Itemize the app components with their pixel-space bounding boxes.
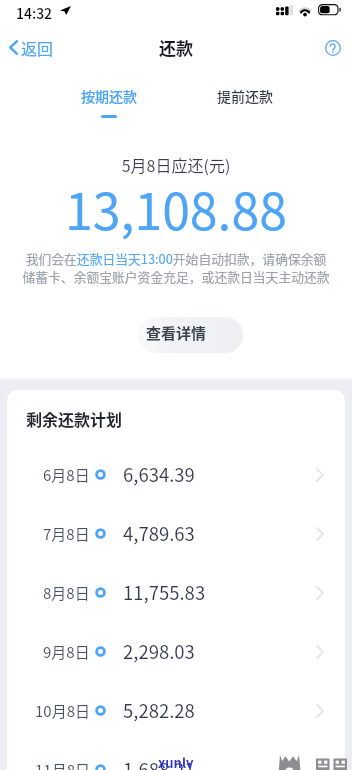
button[interactable]: 8月8日 [0, 563, 352, 622]
staticText: 8月8日 [43, 582, 90, 604]
button[interactable]: 9月8日 [0, 622, 352, 681]
staticText: 返回 [21, 36, 54, 59]
staticText: 还款 [159, 35, 193, 60]
staticText: 提前还款 [217, 86, 273, 106]
staticText: 储蓄卡、余额宝账户资金充足，或还款日当天主动还款 [0, 267, 352, 286]
staticText: 5,282.28 [123, 697, 195, 724]
staticText: 6月8日 [43, 464, 90, 486]
button[interactable]: 7月8日 [0, 504, 352, 563]
staticText: 13,108.88 [0, 172, 352, 244]
button[interactable]: 6月8日 [0, 445, 352, 504]
staticText: 2,298.03 [123, 638, 195, 665]
staticText: 我们会在还款日当天13:00开始自动扣款，请确保余额 [0, 249, 352, 268]
staticText: 按期还款 [81, 86, 137, 106]
staticText: 14:32 [16, 3, 53, 23]
staticText: xunlv [158, 753, 194, 770]
button[interactable]: 11月8日 [0, 740, 352, 770]
button[interactable] [138, 317, 243, 353]
staticText: 6,634.39 [123, 461, 195, 488]
staticText: 1,688.21 [123, 756, 195, 770]
button[interactable]: Help [320, 34, 346, 60]
button[interactable]: 返回 [4, 30, 62, 65]
staticText: 5月8日应还(元) [0, 153, 352, 176]
staticText: 7月8日 [43, 523, 90, 545]
button[interactable]: 提前还款 [192, 72, 297, 120]
staticText: 剩余还款计划 [26, 407, 123, 430]
button[interactable]: 按期还款 [56, 72, 161, 120]
staticText: 11,755.83 [123, 579, 206, 606]
staticText: 查看详情 [0, 322, 352, 344]
button[interactable]: 10月8日 [0, 681, 352, 740]
staticText: 10月8日 [35, 700, 90, 722]
staticText: 11月8日 [35, 759, 90, 770]
staticText: 4,789.63 [123, 520, 195, 547]
staticText: 9月8日 [43, 641, 90, 663]
